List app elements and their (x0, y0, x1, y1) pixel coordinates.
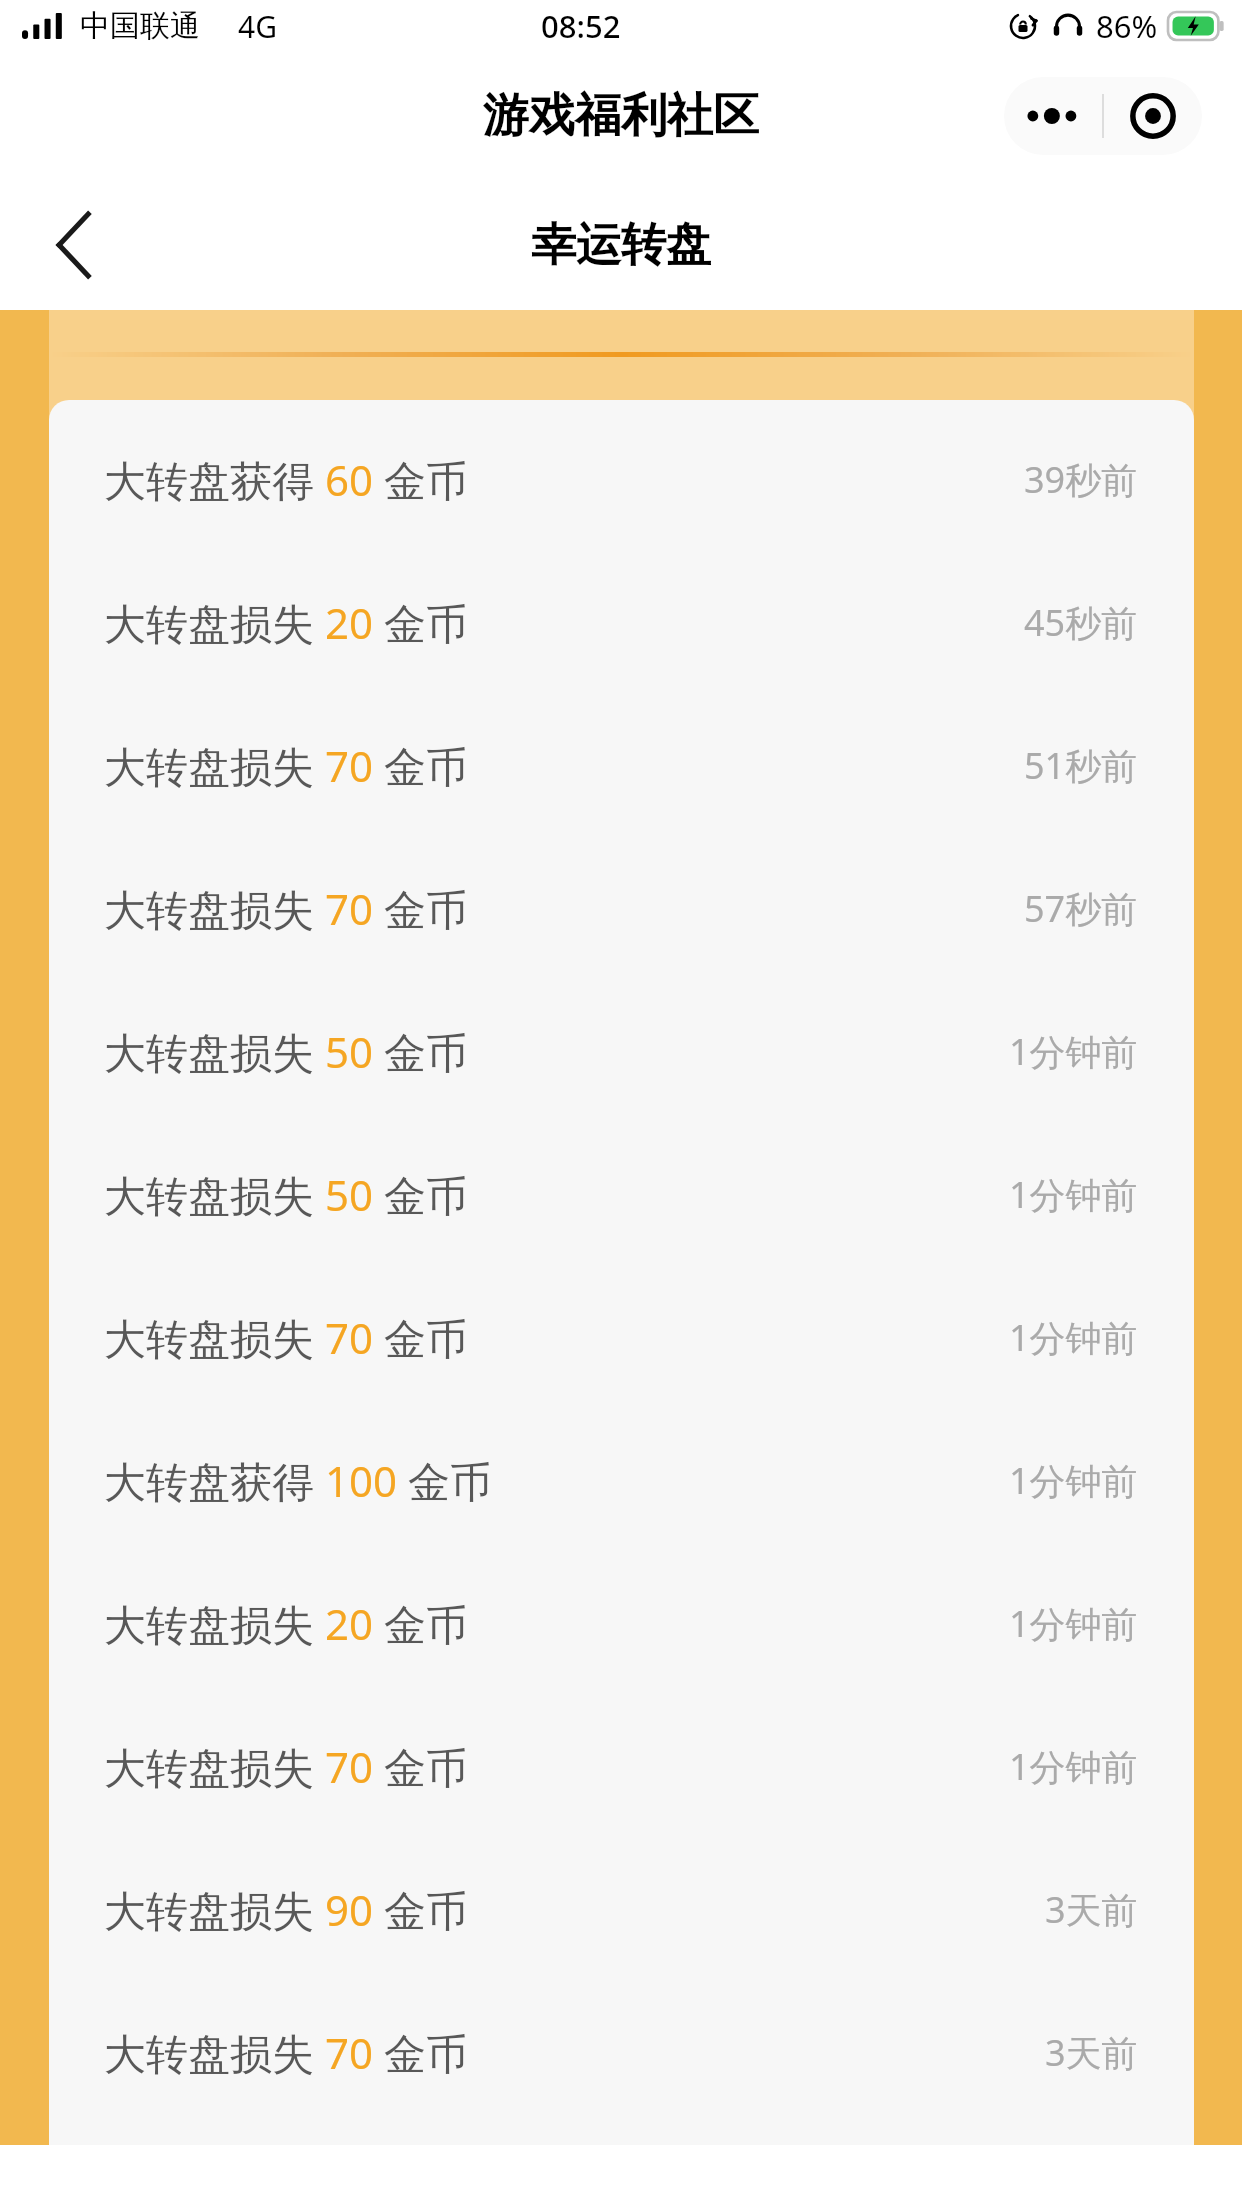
staticText: 1分钟前 (1009, 1027, 1138, 1076)
staticText: 4G (238, 6, 277, 47)
staticText: 1分钟前 (1009, 1313, 1138, 1362)
button[interactable]: 大转盘损失 20 金币 (49, 551, 1194, 694)
staticText: 1分钟前 (1009, 1742, 1138, 1791)
staticText: 1分钟前 (1009, 1599, 1138, 1648)
staticText: 中国联通 (80, 7, 200, 45)
button[interactable]: 大转盘损失 50 金币 (49, 1123, 1194, 1266)
button[interactable]: 大转盘损失 70 金币 (49, 1981, 1194, 2124)
button[interactable]: Back (20, 190, 130, 300)
staticText: 大转盘损失 50 金币 (104, 1166, 468, 1223)
staticText: 08:52 (541, 5, 621, 47)
staticText: 大转盘获得 60 金币 (104, 451, 468, 508)
button[interactable]: Close mini program (1104, 77, 1202, 155)
button[interactable]: 大转盘损失 90 金币 (49, 1838, 1194, 1981)
button[interactable]: 大转盘损失 70 金币 (49, 1266, 1194, 1409)
staticText: 45秒前 (1024, 598, 1138, 647)
staticText: 3天前 (1045, 1885, 1138, 1934)
button[interactable]: 大转盘损失 70 金币 (49, 837, 1194, 980)
staticText: 大转盘损失 50 金币 (104, 1023, 468, 1080)
staticText: 大转盘损失 20 金币 (104, 1595, 468, 1652)
staticText: 大转盘损失 70 金币 (104, 1309, 468, 1366)
staticText: 大转盘获得 100 金币 (104, 1452, 492, 1509)
button[interactable]: More options (1004, 77, 1102, 155)
button[interactable]: 大转盘损失 50 金币 (49, 980, 1194, 1123)
staticText: 大转盘损失 70 金币 (104, 737, 468, 794)
staticText: 86% (1096, 5, 1158, 47)
staticText: 57秒前 (1024, 884, 1138, 933)
button[interactable]: 大转盘损失 70 金币 (49, 694, 1194, 837)
staticText: 大转盘损失 90 金币 (104, 1881, 468, 1938)
button[interactable]: 大转盘获得 60 金币 (49, 408, 1194, 551)
staticText: 51秒前 (1024, 741, 1138, 790)
staticText: 大转盘损失 20 金币 (104, 594, 468, 651)
staticText: 大转盘损失 70 金币 (104, 880, 468, 937)
staticText: 大转盘损失 70 金币 (104, 1738, 468, 1795)
staticText: 3天前 (1045, 2028, 1138, 2077)
staticText: 游戏福利社区 (483, 87, 759, 145)
staticText: 幸运转盘 (531, 217, 711, 274)
button[interactable]: 大转盘获得 100 金币 (49, 1409, 1194, 1552)
button[interactable]: 大转盘损失 20 金币 (49, 1552, 1194, 1695)
staticText: 1分钟前 (1009, 1170, 1138, 1219)
button[interactable]: 大转盘损失 70 金币 (49, 1695, 1194, 1838)
staticText: 39秒前 (1024, 455, 1138, 504)
staticText: 1分钟前 (1009, 1456, 1138, 1505)
staticText: 大转盘损失 70 金币 (104, 2024, 468, 2081)
